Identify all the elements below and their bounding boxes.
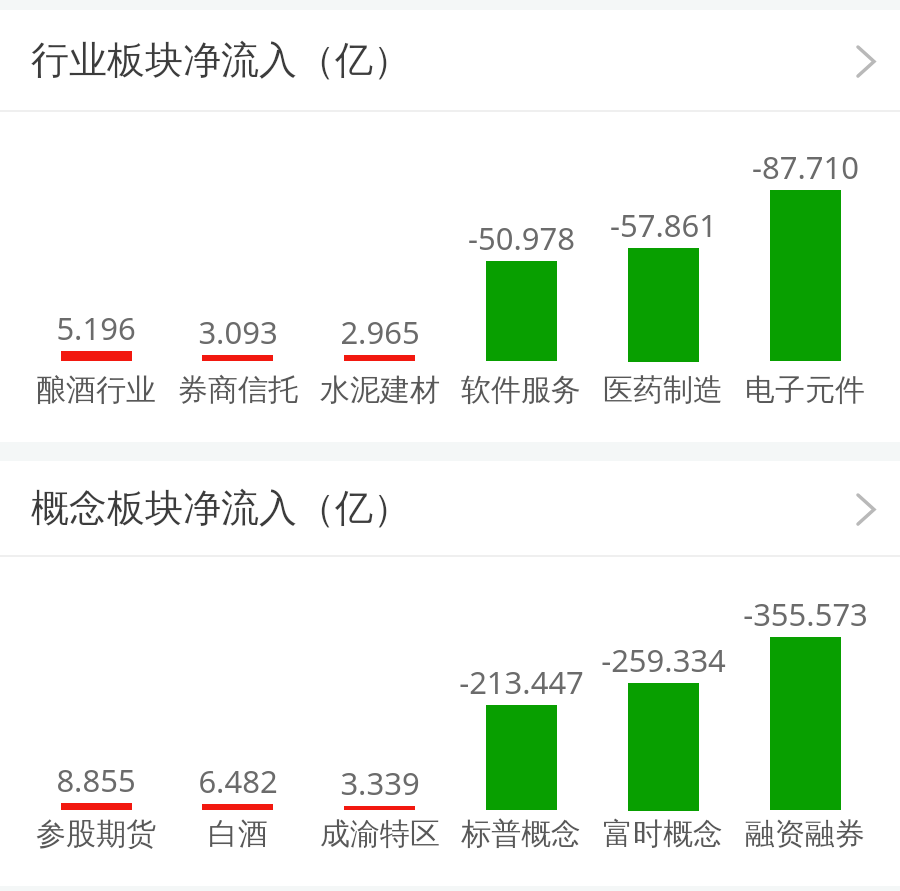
button[interactable]: 行业板块净流入（亿） — [0, 10, 900, 110]
button[interactable]: 券商信托 — [167, 371, 309, 405]
button[interactable]: 成渝特区 — [309, 815, 451, 849]
button[interactable]: 富时概念 — [592, 815, 734, 849]
button[interactable]: 酿酒行业 — [25, 371, 167, 405]
staticText: -259.334 — [601, 639, 726, 677]
staticText: 2.965 — [340, 311, 420, 349]
button[interactable]: 白酒 — [167, 815, 309, 849]
staticText: 成渝特区 — [320, 815, 440, 849]
staticText: 水泥建材 — [320, 371, 440, 405]
button[interactable]: 水泥建材 — [309, 371, 451, 405]
staticText: 电子元件 — [745, 371, 865, 405]
staticText: 融资融券 — [745, 815, 865, 849]
button[interactable]: 融资融券 — [734, 815, 876, 849]
staticText: 参股期货 — [36, 815, 156, 849]
staticText: -355.573 — [743, 593, 868, 631]
button[interactable]: 电子元件 — [734, 371, 876, 405]
staticText: 6.482 — [198, 760, 278, 798]
button[interactable]: 标普概念 — [450, 815, 592, 849]
staticText: -87.710 — [752, 146, 859, 184]
staticText: 概念板块净流入（亿） — [31, 484, 411, 532]
staticText: 标普概念 — [461, 815, 581, 849]
staticText: 券商信托 — [178, 371, 298, 405]
staticText: 8.855 — [56, 759, 136, 797]
staticText: 5.196 — [56, 307, 136, 345]
staticText: 富时概念 — [603, 815, 723, 849]
staticText: 白酒 — [208, 815, 268, 849]
staticText: 3.093 — [198, 311, 278, 349]
staticText: -213.447 — [459, 661, 584, 699]
button[interactable]: 软件服务 — [450, 371, 592, 405]
staticText: 医药制造 — [603, 371, 723, 405]
staticText: -57.861 — [610, 204, 717, 242]
staticText: -50.978 — [468, 217, 575, 255]
staticText: 行业板块净流入（亿） — [31, 36, 411, 84]
button[interactable]: 医药制造 — [592, 371, 734, 405]
button[interactable]: 参股期货 — [25, 815, 167, 849]
staticText: 3.339 — [340, 762, 420, 800]
staticText: 酿酒行业 — [36, 371, 156, 405]
staticText: 软件服务 — [461, 371, 581, 405]
button[interactable]: 概念板块净流入（亿） — [0, 461, 900, 555]
